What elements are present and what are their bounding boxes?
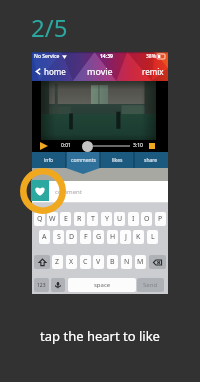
button[interactable]: Play — [40, 142, 48, 150]
button[interactable]: N — [121, 255, 132, 269]
button[interactable]: Send — [137, 278, 164, 292]
staticText: 38% — [146, 53, 156, 60]
button[interactable]: M — [135, 255, 146, 269]
button[interactable]: X — [66, 255, 77, 269]
staticText: Q — [37, 214, 43, 224]
staticText: Send — [143, 281, 158, 289]
staticText: comment — [55, 188, 82, 196]
staticText: J — [125, 232, 127, 242]
button[interactable]: Dictation — [51, 278, 65, 292]
staticText: H — [110, 232, 116, 242]
staticText: O — [144, 214, 150, 224]
staticText: K — [136, 232, 141, 242]
button[interactable]: I — [128, 212, 139, 226]
staticText: No Service — [34, 53, 60, 60]
staticText: X — [69, 257, 74, 267]
staticText: home — [44, 66, 66, 77]
button[interactable]: likes — [100, 152, 134, 168]
staticText: T — [91, 214, 95, 224]
staticText: comments — [71, 157, 96, 164]
button[interactable]: H — [107, 230, 118, 244]
staticText: V — [96, 257, 101, 267]
button[interactable]: J — [120, 230, 131, 244]
button[interactable]: remix — [142, 66, 164, 77]
button[interactable]: T — [87, 212, 98, 226]
button[interactable]: L — [147, 230, 158, 244]
button[interactable]: info — [32, 152, 66, 168]
button[interactable]: comments — [66, 152, 100, 168]
button[interactable]: S — [53, 230, 64, 244]
button[interactable]: W — [47, 212, 58, 226]
staticText: 14:39 — [100, 53, 113, 60]
staticText: 2/5 — [31, 11, 68, 44]
staticText: 3:10 — [133, 142, 143, 149]
staticText: E — [64, 214, 68, 224]
button[interactable]: K — [133, 230, 144, 244]
staticText: tap the heart to like — [40, 327, 160, 345]
staticText: S — [57, 232, 61, 242]
staticText: share — [144, 157, 158, 164]
staticText: G — [96, 232, 102, 242]
staticText: B — [110, 257, 115, 267]
button[interactable]: V — [93, 255, 104, 269]
button[interactable]: P — [155, 212, 166, 226]
staticText: L — [151, 232, 155, 242]
button[interactable]: U — [114, 212, 125, 226]
button[interactable]: G — [93, 230, 104, 244]
staticText: Y — [105, 214, 109, 224]
staticText: C — [83, 257, 88, 267]
staticText: 123 — [37, 282, 46, 289]
staticText: likes — [112, 157, 123, 164]
button[interactable]: 123 — [34, 278, 49, 292]
staticText: D — [69, 232, 75, 242]
button[interactable]: share — [134, 152, 168, 168]
staticText: N — [124, 257, 130, 267]
button[interactable]: O — [141, 212, 152, 226]
staticText: P — [158, 214, 163, 224]
button[interactable]: A — [39, 230, 50, 244]
button[interactable]: C — [80, 255, 91, 269]
button[interactable]: F — [80, 230, 91, 244]
staticText: M — [137, 257, 144, 267]
staticText: F — [84, 232, 88, 242]
staticText: A — [42, 232, 47, 242]
button[interactable]: Key — [149, 255, 166, 269]
staticText: remix — [142, 66, 164, 77]
button[interactable]: D — [66, 230, 77, 244]
staticText: movie — [87, 65, 113, 77]
staticText: R — [77, 214, 82, 224]
other: Like highlight — [20, 168, 66, 214]
staticText: Z — [55, 257, 60, 267]
button[interactable]: Q — [34, 212, 45, 226]
button[interactable]: Key — [34, 255, 50, 269]
staticText: info — [44, 157, 54, 164]
button[interactable]: R — [74, 212, 85, 226]
button[interactable]: Z — [52, 255, 63, 269]
staticText: I — [132, 214, 135, 224]
button[interactable]: B — [107, 255, 118, 269]
button[interactable]: Y — [101, 212, 112, 226]
button[interactable]: home — [35, 61, 171, 81]
button[interactable]: space — [68, 278, 136, 292]
button[interactable]: E — [60, 212, 71, 226]
button[interactable]: Like — [31, 180, 49, 201]
staticText: 0:01 — [61, 142, 71, 149]
staticText: space — [94, 281, 111, 289]
staticText: U — [117, 214, 123, 224]
staticText: W — [49, 214, 56, 224]
